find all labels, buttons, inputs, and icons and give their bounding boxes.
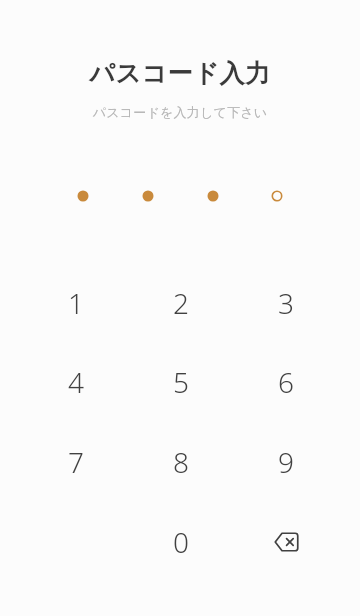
staticText: 9 <box>278 443 294 481</box>
staticText: 8 <box>173 443 189 481</box>
button[interactable]: 6 <box>238 345 334 419</box>
staticText: 7 <box>68 443 84 481</box>
staticText: パスコードを入力して下さい <box>0 104 360 120</box>
button[interactable]: 3 <box>238 266 334 340</box>
button[interactable]: 8 <box>133 425 229 499</box>
staticText: 2 <box>173 284 189 322</box>
button[interactable]: 5 <box>133 345 229 419</box>
staticText: パスコード入力 <box>0 58 360 89</box>
button[interactable]: 4 <box>28 345 124 419</box>
button[interactable]: 0 <box>133 505 229 579</box>
staticText: 0 <box>173 523 189 561</box>
staticText: 4 <box>68 363 84 401</box>
button[interactable]: 7 <box>28 425 124 499</box>
staticText: 6 <box>278 363 294 401</box>
button[interactable]: 9 <box>238 425 334 499</box>
button[interactable]: Delete <box>238 505 334 579</box>
staticText: 1 <box>68 284 84 322</box>
staticText: 3 <box>278 284 294 322</box>
staticText: 5 <box>173 363 189 401</box>
button[interactable]: 2 <box>133 266 229 340</box>
button[interactable]: 1 <box>28 266 124 340</box>
